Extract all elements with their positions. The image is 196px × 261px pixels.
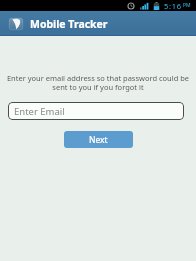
staticText: PM (183, 2, 191, 9)
staticText: 5:16 (164, 1, 182, 11)
staticText: Enter your email address so that passwor… (0, 73, 196, 92)
staticText: Enter Email (14, 105, 65, 118)
button[interactable]: Enter Email (8, 102, 184, 120)
staticText: Next (89, 134, 108, 146)
button[interactable]: Next (64, 131, 133, 148)
staticText: Mobile Tracker (30, 17, 108, 31)
